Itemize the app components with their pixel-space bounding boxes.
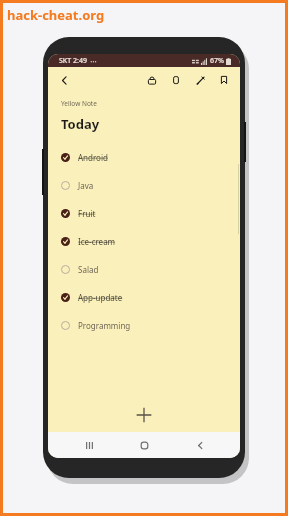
button[interactable]: App-update bbox=[48, 283, 240, 311]
button[interactable]: Back bbox=[185, 432, 215, 458]
staticText: SKT 2:49 bbox=[59, 56, 87, 66]
staticText: Fruit bbox=[78, 208, 96, 219]
button[interactable]: Programming bbox=[48, 311, 240, 339]
button[interactable]: Back bbox=[54, 70, 74, 90]
button[interactable]: Android bbox=[48, 143, 240, 171]
button[interactable]: Recents bbox=[74, 432, 104, 458]
staticText: 67% bbox=[210, 56, 224, 66]
button[interactable]: Fruit bbox=[48, 199, 240, 227]
staticText: Android bbox=[78, 152, 108, 163]
staticText: hack-cheat.org bbox=[7, 6, 105, 24]
button[interactable]: Home bbox=[129, 432, 159, 458]
button[interactable]: Add note item bbox=[48, 398, 240, 432]
staticText: App-update bbox=[78, 292, 123, 303]
button[interactable]: Java bbox=[48, 171, 240, 199]
staticText: Today bbox=[61, 115, 100, 133]
button[interactable]: Edit note bbox=[191, 71, 209, 89]
button[interactable]: Ice-cream bbox=[48, 227, 240, 255]
staticText: Ice-cream bbox=[78, 236, 116, 247]
staticText: Salad bbox=[78, 264, 99, 275]
button[interactable]: Salad bbox=[48, 255, 240, 283]
button[interactable]: Delete note bbox=[167, 71, 185, 89]
button[interactable]: Lock note bbox=[143, 71, 161, 89]
staticText: Yellow Note bbox=[61, 99, 97, 108]
staticText: Programming bbox=[78, 320, 131, 331]
button[interactable]: Bookmark note bbox=[215, 71, 233, 89]
staticText: Java bbox=[78, 180, 94, 191]
